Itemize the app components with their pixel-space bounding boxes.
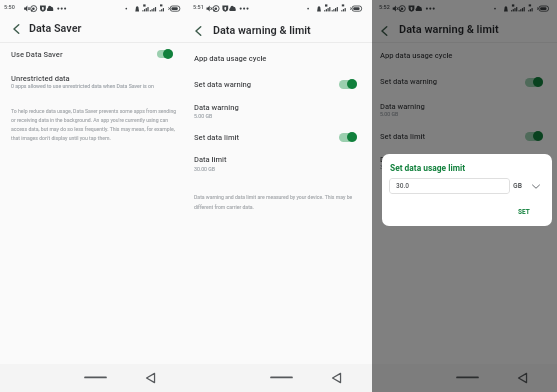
staticText: Data limit [194, 155, 227, 164]
button[interactable] [372, 0, 557, 392]
staticText: 5:51 [193, 4, 204, 10]
staticText: GB [513, 182, 522, 190]
staticText: 30.00 GB [380, 164, 402, 170]
staticText: 30.0 [396, 182, 410, 190]
button[interactable]: Home [264, 364, 298, 392]
button[interactable]: SET [511, 205, 537, 219]
button[interactable]: Toggle [339, 131, 359, 143]
button[interactable]: Choose unit [530, 180, 542, 192]
staticText: Data warning [194, 103, 239, 112]
button[interactable]: Toggle [525, 130, 545, 142]
button[interactable] [0, 44, 186, 66]
button[interactable] [0, 70, 186, 92]
button[interactable] [186, 74, 372, 95]
button[interactable]: Back [8, 16, 24, 42]
staticText: 5:50 [4, 4, 15, 10]
staticText: Set data warning [194, 80, 252, 89]
button[interactable] [186, 48, 372, 69]
staticText: Data warning & limit [213, 24, 311, 37]
staticText: Data warning [380, 102, 425, 111]
staticText: 5:52 [379, 4, 390, 10]
button[interactable]: Back [510, 364, 534, 392]
button[interactable] [186, 151, 372, 175]
button[interactable]: Back [324, 364, 348, 392]
button[interactable]: Toggle [157, 48, 175, 60]
staticText: To help reduce data usage, Data Saver pr… [11, 108, 180, 141]
button[interactable]: Toggle [339, 78, 359, 90]
button[interactable]: Toggle [525, 76, 545, 88]
button[interactable]: 30.0 [389, 178, 510, 194]
button[interactable]: Back [138, 364, 162, 392]
staticText: Unrestricted data [11, 74, 70, 83]
staticText: Data limit [380, 155, 413, 164]
button[interactable] [186, 127, 372, 148]
staticText: Set data limit [194, 133, 239, 142]
staticText: 0 apps allowed to use unrestricted data … [11, 83, 154, 89]
staticText: Data warning and data limit are measured… [194, 194, 366, 210]
staticText: 30.00 GB [194, 166, 216, 172]
staticText: Set data warning [380, 77, 438, 86]
staticText: App data usage cycle [380, 51, 453, 60]
button[interactable]: Back [376, 18, 392, 44]
staticText: Use Data Saver [11, 50, 63, 59]
staticText: 5.00 GB [194, 113, 213, 119]
staticText: Data warning & limit [399, 23, 499, 36]
staticText: Set data limit [380, 132, 425, 141]
staticText: App data usage cycle [194, 54, 267, 63]
staticText: 5.00 GB [380, 111, 399, 117]
staticText: SET [518, 208, 530, 216]
staticText: Set data usage limit [390, 163, 465, 173]
button[interactable]: Back [190, 18, 206, 44]
button[interactable] [186, 98, 372, 122]
staticText: Data Saver [29, 22, 82, 35]
button[interactable]: Home [78, 364, 112, 392]
button[interactable]: Home [450, 364, 484, 392]
